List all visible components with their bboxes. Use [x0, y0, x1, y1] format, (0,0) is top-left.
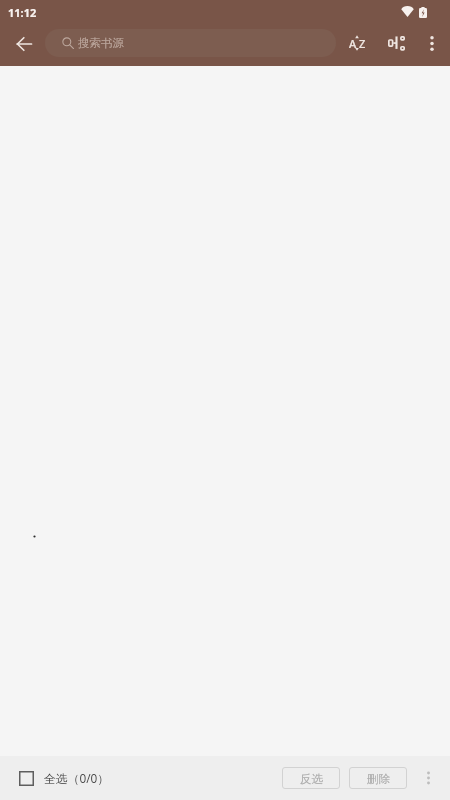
staticText: A	[349, 36, 357, 51]
button[interactable]: 反选	[282, 767, 340, 789]
staticText: 删除	[367, 772, 390, 786]
staticText: 反选	[300, 772, 323, 786]
staticText: Z	[359, 36, 365, 51]
button[interactable]: 全选（0/0）	[11, 764, 118, 792]
button[interactable]: More options	[407, 758, 450, 798]
staticText: 11:12	[8, 5, 37, 20]
button[interactable]: Groups	[377, 23, 416, 63]
button[interactable]: Back	[4, 24, 44, 64]
button[interactable]: 删除	[349, 767, 407, 789]
staticText: 全选（0/0）	[44, 770, 110, 786]
button[interactable]: 搜索书源	[45, 29, 336, 57]
button[interactable]: Sort by name	[337, 23, 377, 63]
staticText: 搜索书源	[78, 36, 124, 50]
button[interactable]: More options	[413, 25, 450, 62]
